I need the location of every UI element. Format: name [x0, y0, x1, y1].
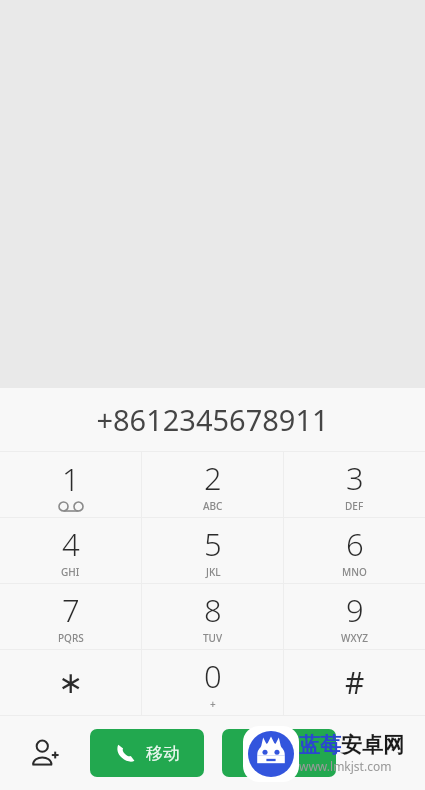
- staticText: +8612345678911: [96, 400, 329, 439]
- staticText: +: [210, 697, 216, 711]
- button[interactable]: #: [284, 650, 425, 715]
- staticText: ∗: [58, 665, 84, 700]
- button[interactable]: 7: [0, 584, 141, 649]
- staticText: 8: [204, 589, 222, 631]
- staticText: GHI: [61, 565, 80, 579]
- staticText: 6: [346, 523, 364, 565]
- button[interactable]: 8: [142, 584, 283, 649]
- button[interactable]: Call: [222, 729, 336, 777]
- staticText: 蓝莓: [299, 732, 341, 758]
- staticText: #: [345, 662, 365, 703]
- staticText: 7: [62, 589, 80, 631]
- staticText: WXYZ: [341, 631, 369, 645]
- button[interactable]: 9: [284, 584, 425, 649]
- button[interactable]: 2: [142, 452, 283, 517]
- button[interactable]: 6: [284, 518, 425, 583]
- staticText: PQRS: [58, 631, 84, 645]
- button[interactable]: Add contact: [0, 716, 90, 790]
- staticText: 2: [204, 457, 222, 499]
- staticText: 0: [204, 655, 222, 697]
- staticText: 移动: [146, 743, 180, 764]
- button[interactable]: 0: [142, 650, 283, 715]
- button[interactable]: 5: [142, 518, 283, 583]
- button[interactable]: ∗: [0, 650, 141, 715]
- button[interactable]: 4: [0, 518, 141, 583]
- staticText: JKL: [206, 565, 221, 579]
- staticText: 安卓网: [341, 732, 404, 758]
- staticText: 9: [346, 589, 364, 631]
- button[interactable]: 移动: [90, 729, 204, 777]
- staticText: ABC: [203, 499, 223, 513]
- button[interactable]: 1: [0, 452, 141, 517]
- staticText: DEF: [345, 499, 364, 513]
- staticText: www.lmkjst.com: [299, 758, 392, 774]
- staticText: 3: [346, 457, 364, 499]
- staticText: TUV: [203, 631, 223, 645]
- staticText: 1: [62, 458, 80, 500]
- staticText: 4: [62, 523, 80, 565]
- button[interactable]: 3: [284, 452, 425, 517]
- staticText: 5: [204, 523, 222, 565]
- staticText: MNO: [342, 565, 367, 579]
